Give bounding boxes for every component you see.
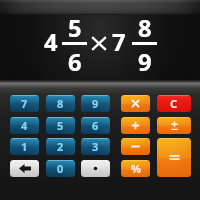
- button[interactable]: 8: [46, 95, 75, 112]
- staticText: 6: [92, 118, 99, 133]
- button[interactable]: back: [10, 160, 39, 177]
- staticText: 5: [57, 118, 64, 133]
- staticText: 8: [57, 96, 64, 111]
- button[interactable]: plus: [121, 117, 150, 134]
- button[interactable]: pm: [157, 117, 191, 134]
- staticText: 6: [68, 46, 82, 78]
- staticText: C: [170, 96, 178, 111]
- staticText: 9: [92, 96, 99, 111]
- staticText: 4: [44, 26, 58, 58]
- button[interactable]: 7: [10, 95, 39, 112]
- button[interactable]: pct: [121, 160, 150, 177]
- button[interactable]: 0: [46, 160, 75, 177]
- staticText: 5: [68, 12, 82, 44]
- staticText: 8: [138, 12, 152, 44]
- button[interactable]: 1: [10, 138, 39, 155]
- button[interactable]: mul: [121, 95, 150, 112]
- staticText: 9: [138, 46, 152, 78]
- staticText: 2: [57, 139, 64, 154]
- button[interactable]: eq: [157, 138, 191, 177]
- staticText: 7: [21, 96, 28, 111]
- button[interactable]: minus: [121, 138, 150, 155]
- staticText: 1: [21, 139, 28, 154]
- button[interactable]: 5: [46, 117, 75, 134]
- staticText: %: [131, 161, 141, 176]
- button[interactable]: 2: [46, 138, 75, 155]
- button[interactable]: 6: [81, 117, 110, 134]
- button[interactable]: dot: [81, 160, 110, 177]
- staticText: 3: [92, 139, 99, 154]
- staticText: 0: [57, 161, 64, 176]
- button[interactable]: 3: [81, 138, 110, 155]
- button[interactable]: C: [157, 95, 191, 112]
- staticText: 4: [21, 118, 28, 133]
- staticText: 7: [112, 26, 126, 58]
- button[interactable]: 9: [81, 95, 110, 112]
- button[interactable]: 4: [10, 117, 39, 134]
